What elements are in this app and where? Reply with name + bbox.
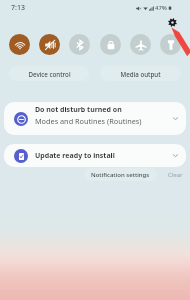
staticText: Clear [168,171,183,179]
button[interactable]: Settings [168,18,177,27]
staticText: 7:13 [11,3,25,13]
staticText: Do not disturb turned on [35,105,122,115]
button[interactable]: Update ready to install [4,144,186,167]
staticText: Notification settings [91,171,150,179]
button[interactable]: Flashlight [160,34,181,55]
staticText: 47% [155,4,167,12]
button[interactable]: Device control [9,66,89,81]
button[interactable]: Do not disturb turned on [4,102,186,135]
button[interactable]: Notification settings [84,168,157,181]
button[interactable]: Wi-Fi [9,34,30,55]
button[interactable]: Bluetooth [69,34,90,55]
button[interactable]: Clear [168,171,183,179]
button[interactable]: Media output [100,66,181,81]
button[interactable]: Sound off [39,34,60,55]
staticText: Media output [120,70,161,78]
button[interactable]: Airplane mode [130,34,151,55]
staticText: Device control [28,70,71,78]
staticText: Update ready to install [35,151,115,161]
button[interactable]: Lock [100,34,121,55]
staticText: Modes and Routines (Routines) [35,116,142,126]
